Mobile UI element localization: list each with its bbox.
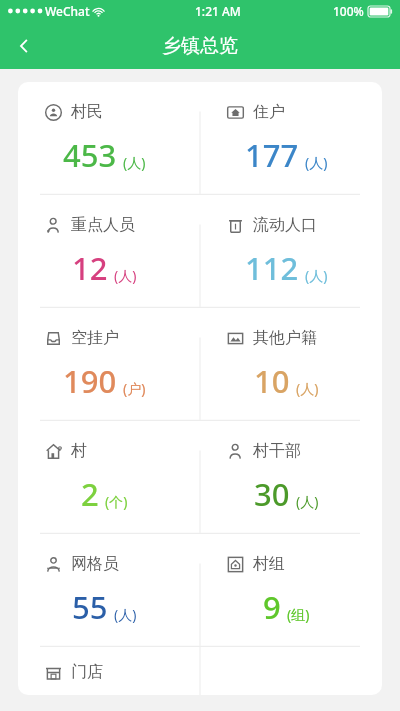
staticText: 门店 <box>71 662 103 682</box>
staticText: 其他户籍 <box>253 328 317 348</box>
button[interactable]: 住户 <box>200 82 382 195</box>
button[interactable]: 重点人员 <box>18 195 200 308</box>
staticText: 2 <box>81 473 99 515</box>
button[interactable]: 村干部 <box>200 421 382 534</box>
staticText: (户) <box>123 379 146 398</box>
staticText: 9 <box>263 586 281 628</box>
button[interactable]: 村民 <box>18 82 200 195</box>
staticText: 网格员 <box>71 554 119 574</box>
staticText: (人) <box>296 492 319 511</box>
button[interactable]: 村组 <box>200 534 382 647</box>
button[interactable]: Back <box>0 22 48 69</box>
staticText: (人) <box>296 379 319 398</box>
staticText: (人) <box>305 153 328 172</box>
staticText: 10 <box>254 360 290 402</box>
staticText: 乡镇总览 <box>162 34 238 58</box>
staticText: 村 <box>71 441 87 461</box>
staticText: 村组 <box>253 554 285 574</box>
button[interactable]: 门店 <box>18 647 200 695</box>
staticText: (个) <box>105 492 128 511</box>
staticText: 190 <box>63 360 117 402</box>
staticText: 12 <box>72 247 108 289</box>
staticText: 重点人员 <box>71 215 135 235</box>
staticText: 100% <box>333 3 364 19</box>
staticText: 空挂户 <box>71 328 119 348</box>
staticText: 住户 <box>253 102 285 122</box>
staticText: (人) <box>305 266 328 285</box>
staticText: 55 <box>72 586 108 628</box>
staticText: (人) <box>114 266 137 285</box>
button[interactable]: 其他户籍 <box>200 308 382 421</box>
staticText: WeChat <box>45 3 90 19</box>
button[interactable]: 网格员 <box>18 534 200 647</box>
button[interactable]: 流动人口 <box>200 195 382 308</box>
staticText: 177 <box>245 134 299 176</box>
button[interactable]: 村 <box>18 421 200 534</box>
staticText: 112 <box>245 247 299 289</box>
staticText: 村干部 <box>253 441 301 461</box>
staticText: 1:21 AM <box>195 3 241 19</box>
staticText: 村民 <box>71 102 103 122</box>
staticText: (人) <box>123 153 146 172</box>
staticText: 453 <box>63 134 117 176</box>
button[interactable]: 空挂户 <box>18 308 200 421</box>
staticText: 流动人口 <box>253 215 317 235</box>
staticText: (组) <box>287 605 310 624</box>
staticText: (人) <box>114 605 137 624</box>
staticText: 30 <box>254 473 290 515</box>
